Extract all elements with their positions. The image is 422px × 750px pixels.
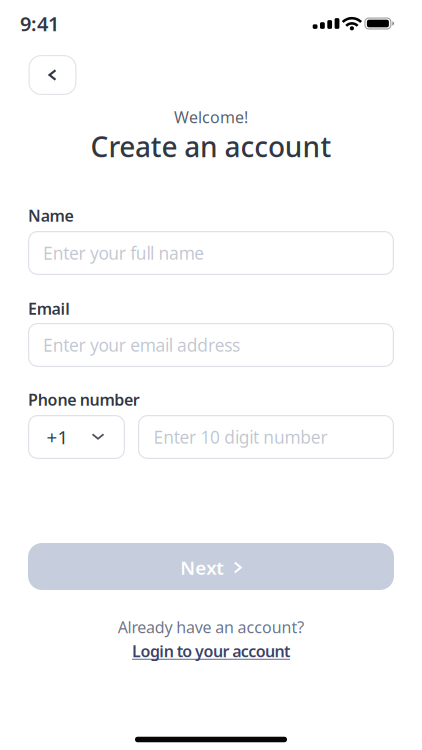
staticText: Email <box>28 298 70 319</box>
button[interactable]: +1 <box>28 415 125 459</box>
staticText: Already have an account? <box>118 616 304 638</box>
staticText: Login to your account <box>132 640 290 662</box>
button[interactable]: Enter 10 digit number <box>138 415 394 459</box>
staticText: Create an account <box>91 128 331 165</box>
staticText: Enter 10 digit number <box>153 425 327 448</box>
staticText: Enter your full name <box>43 241 204 264</box>
staticText: Phone number <box>28 389 140 410</box>
staticText: Enter your email address <box>43 333 240 356</box>
staticText: Name <box>28 205 73 226</box>
staticText: Welcome! <box>174 106 248 128</box>
staticText: Next <box>180 555 224 580</box>
button[interactable]: Next <box>28 543 394 590</box>
button[interactable]: Enter your email address <box>28 323 394 367</box>
staticText: +1 <box>46 425 68 449</box>
button[interactable] <box>28 55 76 95</box>
staticText: 9:41 <box>20 10 59 37</box>
button[interactable]: Login to your account <box>132 640 290 662</box>
button[interactable]: Enter your full name <box>28 231 394 275</box>
